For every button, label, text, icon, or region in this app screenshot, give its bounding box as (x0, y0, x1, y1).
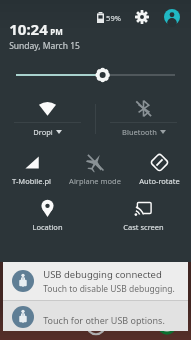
staticText: USB debugging connected (43, 268, 162, 281)
button[interactable]: Settings (132, 7, 152, 27)
staticText: 10:24 (9, 19, 48, 39)
staticText: Auto-rotate (139, 176, 180, 186)
button[interactable]: Brightness (0, 58, 191, 92)
staticText: Sunday, March 15 (9, 40, 80, 52)
staticText: Location (32, 222, 63, 232)
staticText: Airplane mode (69, 176, 121, 186)
staticText: PM (50, 26, 63, 37)
button[interactable]: Location (0, 193, 95, 232)
button[interactable]: USB debugging connected (3, 262, 188, 300)
staticText: 59% (106, 13, 121, 23)
staticText: Dropi (33, 127, 53, 137)
button[interactable]: Cast screen (95, 193, 191, 232)
staticText: Bluetooth (122, 127, 157, 137)
staticText: T-Mobile.pl (12, 176, 51, 186)
button[interactable]: T-Mobile.pl (0, 147, 63, 186)
button[interactable]: User profile (162, 7, 182, 27)
staticText: Touch for other USB options. (43, 314, 165, 326)
button[interactable]: Bluetooth (96, 94, 191, 137)
button[interactable]: Auto-rotate (127, 147, 191, 186)
button[interactable]: Touch for other USB options. (3, 301, 188, 331)
button[interactable]: Dropi (0, 94, 95, 137)
button[interactable]: Airplane mode (63, 147, 127, 186)
staticText: Cast screen (123, 222, 164, 232)
staticText: Touch to disable USB debugging. (43, 283, 175, 295)
